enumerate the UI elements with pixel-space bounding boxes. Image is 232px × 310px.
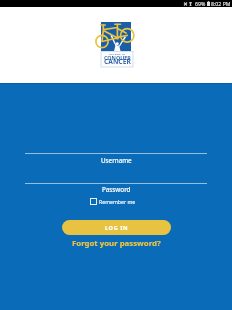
staticText: 8:02 PM — [211, 0, 231, 7]
staticText: Username — [101, 156, 132, 165]
staticText: 69% — [195, 0, 206, 7]
staticText: Password — [102, 185, 131, 194]
button[interactable]: Remember me — [88, 197, 138, 206]
button[interactable] — [0, 147, 232, 165]
button[interactable]: LOG IN — [62, 220, 171, 235]
button[interactable]: Forgot your password? — [69, 236, 164, 251]
staticText: CANCER — [104, 57, 131, 66]
staticText: CONQUER — [104, 54, 131, 61]
staticText: THE RIDE TO — [109, 53, 126, 56]
button[interactable] — [0, 177, 232, 195]
staticText: LOG IN — [105, 224, 129, 232]
staticText: Remember me — [99, 198, 136, 205]
